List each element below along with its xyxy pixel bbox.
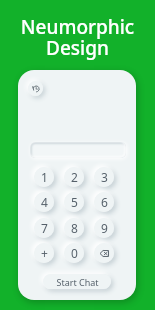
button[interactable]: Start Chat: [43, 274, 111, 289]
staticText: 1: [41, 169, 48, 185]
staticText: 5: [71, 194, 78, 210]
button[interactable]: 9: [94, 218, 114, 238]
staticText: 0: [71, 245, 78, 261]
button[interactable]: [30, 142, 126, 158]
staticText: 3: [101, 169, 108, 185]
button[interactable]: Backspace: [94, 243, 114, 263]
staticText: +: [41, 245, 48, 261]
button[interactable]: 0: [64, 243, 84, 263]
button[interactable]: 8: [64, 218, 84, 238]
button[interactable]: +: [34, 243, 54, 263]
button[interactable]: 4: [34, 192, 54, 212]
staticText: 7: [41, 220, 48, 236]
button[interactable]: 7: [34, 218, 54, 238]
staticText: Neumorphic Design: [0, 14, 155, 61]
staticText: 4: [41, 194, 48, 210]
button[interactable]: 1: [34, 167, 54, 187]
button[interactable]: 6: [94, 192, 114, 212]
staticText: 2: [71, 169, 78, 185]
button[interactable]: 3: [94, 167, 114, 187]
button[interactable]: History: [28, 81, 43, 96]
button[interactable]: 2: [64, 167, 84, 187]
staticText: 8: [71, 220, 78, 236]
staticText: Start Chat: [56, 276, 99, 288]
staticText: 6: [101, 194, 108, 210]
staticText: 9: [101, 220, 108, 236]
button[interactable]: 5: [64, 192, 84, 212]
